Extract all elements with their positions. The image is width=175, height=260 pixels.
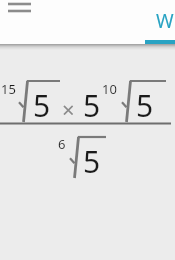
button[interactable]: Menu — [6, 0, 34, 19]
button[interactable]: W tab — [155, 0, 175, 44]
